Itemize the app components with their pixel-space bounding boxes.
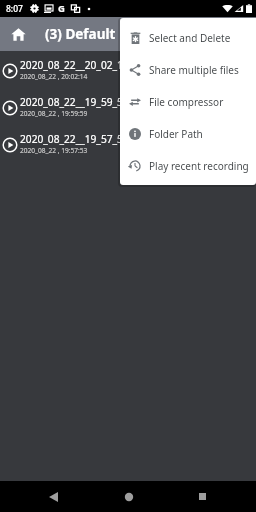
staticText: 8:07 (6, 3, 23, 15)
staticText: G (58, 2, 65, 15)
staticText: Play recent recording (149, 159, 249, 173)
button[interactable]: 2020_08_22__20_02_14 (0, 52, 256, 89)
staticText: 2020_08_22__20_02_14 (20, 58, 129, 72)
staticText: 2020_08_22__19_59_59 (20, 95, 129, 109)
button[interactable]: 2020_08_22__19_57_53 (0, 126, 256, 163)
button[interactable]: Back (38, 481, 69, 512)
button[interactable]: Home (113, 481, 144, 512)
staticText: Share multiple files (149, 63, 239, 77)
staticText: 2020_08_22 , 19:59:59 (20, 109, 88, 118)
staticText: 2020_08_22__19_57_53 (20, 132, 129, 146)
button[interactable]: Play recent recording (120, 150, 256, 182)
button[interactable]: File compressor (120, 86, 256, 118)
staticText: Select and Delete (149, 31, 231, 45)
staticText: File compressor (149, 95, 224, 109)
staticText: 2020_08_22 , 19:57:53 (20, 146, 88, 155)
button[interactable]: Home (1, 17, 35, 51)
button[interactable]: Share multiple files (120, 54, 256, 86)
button[interactable]: Recents (187, 481, 218, 512)
button[interactable]: Folder Path (120, 118, 256, 150)
staticText: (3) Default (45, 25, 116, 43)
button[interactable]: 2020_08_22__19_59_59 (0, 89, 256, 126)
staticText: Folder Path (149, 127, 203, 141)
button[interactable]: Select and Delete (120, 22, 256, 54)
staticText: 2020_08_22 , 20:02:14 (20, 72, 88, 81)
